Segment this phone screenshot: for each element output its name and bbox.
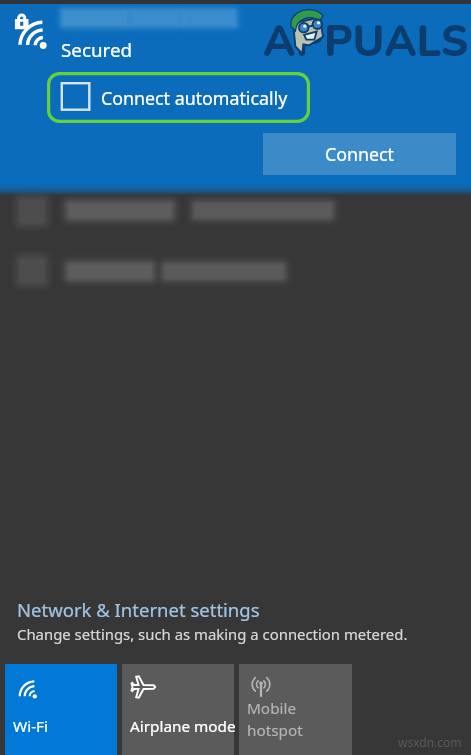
staticText: wsxdn.com [398, 734, 462, 750]
button[interactable]: Connect [263, 133, 456, 175]
staticText: Connect [325, 142, 395, 166]
staticText: Mobile hotspot [247, 698, 303, 741]
button[interactable]: Connect automatically [47, 72, 310, 123]
button[interactable]: Network & Internet settings [17, 597, 260, 622]
button[interactable]: Airplane mode [122, 664, 234, 755]
staticText: Change settings, such as making a connec… [17, 624, 408, 644]
staticText: Wi-Fi [13, 716, 48, 737]
button[interactable]: Wi-Fi [5, 664, 117, 755]
staticText: Airplane mode [130, 716, 236, 737]
staticText: Secured [61, 37, 133, 63]
button[interactable]: Mobile hotspot [239, 664, 352, 755]
staticText: Connect automatically [101, 86, 288, 110]
staticText: APPUALS [263, 13, 469, 69]
